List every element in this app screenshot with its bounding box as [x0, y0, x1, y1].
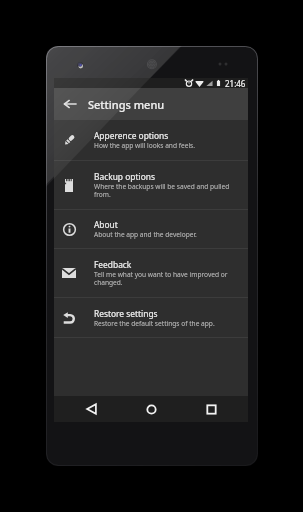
staticText: About [94, 219, 118, 230]
staticText: Apperence options [94, 130, 169, 141]
staticText: Tell me what you want to have improved o… [94, 270, 239, 287]
button[interactable]: Feedback [54, 249, 248, 297]
staticText: Backup options [94, 171, 155, 182]
staticText: Restore the default settings of the app. [94, 319, 215, 328]
button[interactable]: Home [128, 396, 174, 422]
staticText: How the app will looks and feels. [94, 141, 196, 150]
staticText: Restore settings [94, 308, 158, 319]
staticText: Feedback [94, 259, 132, 270]
button[interactable]: Back [68, 396, 114, 422]
button[interactable]: Recents [188, 396, 234, 422]
staticText: Settings menu [88, 97, 165, 112]
staticText: Where the backups will be saved and pull… [94, 182, 239, 199]
staticText: 21:46 [225, 78, 246, 88]
button[interactable]: About [54, 210, 248, 248]
button[interactable]: Back [54, 88, 86, 120]
button[interactable]: Restore settings [54, 298, 248, 337]
staticText: About the app and the developer. [94, 230, 197, 239]
button[interactable]: Backup options [54, 161, 248, 209]
button[interactable]: Apperence options [54, 120, 248, 160]
